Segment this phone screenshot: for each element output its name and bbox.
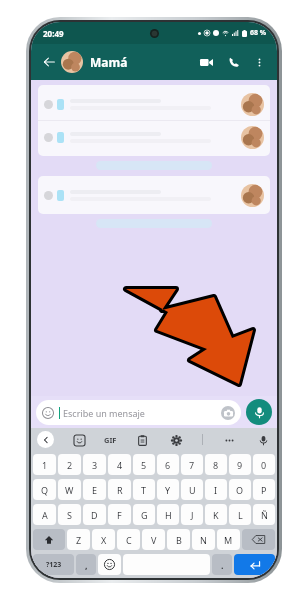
- button[interactable]: G: [133, 504, 155, 525]
- button[interactable]: F: [108, 504, 131, 525]
- button[interactable]: Voice message: [246, 399, 272, 425]
- button[interactable]: Expand toolbar: [37, 431, 54, 448]
- button[interactable]: 8: [205, 454, 227, 475]
- staticText: G: [141, 509, 148, 521]
- staticText: S: [67, 509, 72, 521]
- button[interactable]: Clipboard: [134, 432, 150, 448]
- button[interactable]: 4: [108, 454, 131, 475]
- button[interactable]: More: [221, 432, 237, 448]
- button[interactable]: Camera: [221, 406, 235, 420]
- staticText: L: [238, 509, 243, 521]
- staticText: J: [191, 509, 194, 521]
- button[interactable]: More options: [249, 52, 269, 72]
- staticText: U: [189, 484, 196, 496]
- button[interactable]: W: [58, 479, 81, 500]
- button[interactable]: ,: [76, 554, 96, 575]
- staticText: M: [224, 534, 233, 546]
- button[interactable]: R: [108, 479, 131, 500]
- button[interactable]: Video call: [195, 51, 217, 73]
- button[interactable]: Ñ: [253, 504, 275, 525]
- staticText: Escribe un mensaje: [63, 407, 221, 419]
- button[interactable]: [44, 121, 264, 153]
- staticText: Ñ: [261, 509, 268, 521]
- button[interactable]: 6: [157, 454, 179, 475]
- button[interactable]: [44, 88, 264, 120]
- button[interactable]: T: [133, 479, 155, 500]
- button[interactable]: M: [217, 529, 240, 550]
- button[interactable]: Mamá: [61, 51, 195, 73]
- staticText: 3: [92, 459, 98, 471]
- staticText: GIF: [104, 435, 117, 445]
- staticText: W: [65, 484, 74, 496]
- button[interactable]: Backspace: [242, 529, 275, 550]
- button[interactable]: Space: [123, 554, 210, 575]
- button[interactable]: [44, 179, 264, 211]
- button[interactable]: .: [212, 554, 232, 575]
- button[interactable]: A: [33, 504, 56, 525]
- button[interactable]: S: [58, 504, 81, 525]
- staticText: X: [101, 534, 107, 546]
- button[interactable]: Stickers: [71, 432, 87, 448]
- staticText: 0: [261, 459, 267, 471]
- button[interactable]: Voice call: [223, 51, 245, 73]
- staticText: D: [91, 509, 98, 521]
- staticText: 7: [189, 459, 195, 471]
- staticText: 2: [67, 459, 73, 471]
- staticText: B: [176, 534, 182, 546]
- button[interactable]: GIF: [104, 435, 117, 445]
- staticText: 6: [165, 459, 171, 471]
- button[interactable]: P: [253, 479, 275, 500]
- button[interactable]: 5: [133, 454, 155, 475]
- staticText: K: [213, 509, 219, 521]
- staticText: ,: [85, 559, 88, 571]
- staticText: ?123: [46, 560, 62, 570]
- button[interactable]: Emoji: [98, 554, 121, 575]
- staticText: 8: [213, 459, 219, 471]
- staticText: 9: [237, 459, 243, 471]
- staticText: T: [141, 484, 147, 496]
- button[interactable]: 1: [33, 454, 56, 475]
- button[interactable]: 3: [83, 454, 106, 475]
- button[interactable]: B: [167, 529, 190, 550]
- staticText: N: [200, 534, 207, 546]
- button[interactable]: Back: [39, 52, 59, 72]
- button[interactable]: Shift: [33, 529, 65, 550]
- button[interactable]: 2: [58, 454, 81, 475]
- staticText: 20:49: [43, 28, 64, 39]
- button[interactable]: Z: [67, 529, 90, 550]
- button[interactable]: Y: [157, 479, 179, 500]
- button[interactable]: Settings: [168, 432, 184, 448]
- button[interactable]: C: [117, 529, 140, 550]
- button[interactable]: I: [205, 479, 227, 500]
- button[interactable]: ?123: [33, 554, 74, 575]
- button[interactable]: Enter: [234, 554, 275, 575]
- button[interactable]: 0: [253, 454, 275, 475]
- staticText: 68 %: [250, 28, 267, 38]
- button[interactable]: K: [205, 504, 227, 525]
- staticText: E: [92, 484, 98, 496]
- staticText: O: [236, 484, 244, 496]
- staticText: I: [214, 484, 218, 496]
- button[interactable]: L: [229, 504, 251, 525]
- staticText: Mamá: [90, 54, 128, 70]
- button[interactable]: H: [157, 504, 179, 525]
- staticText: 5: [141, 459, 147, 471]
- button[interactable]: Voice input: [255, 432, 271, 448]
- staticText: 1: [42, 459, 48, 471]
- button[interactable]: D: [83, 504, 106, 525]
- button[interactable]: Escribe un mensaje: [36, 400, 241, 425]
- staticText: Y: [165, 484, 171, 496]
- button[interactable]: V: [142, 529, 165, 550]
- button[interactable]: N: [192, 529, 215, 550]
- staticText: .: [221, 559, 224, 571]
- button[interactable]: Q: [33, 479, 56, 500]
- button[interactable]: 7: [181, 454, 203, 475]
- button[interactable]: X: [92, 529, 115, 550]
- button[interactable]: E: [83, 479, 106, 500]
- button[interactable]: J: [181, 504, 203, 525]
- staticText: F: [117, 509, 122, 521]
- staticText: A: [42, 509, 48, 521]
- button[interactable]: 9: [229, 454, 251, 475]
- button[interactable]: U: [181, 479, 203, 500]
- button[interactable]: O: [229, 479, 251, 500]
